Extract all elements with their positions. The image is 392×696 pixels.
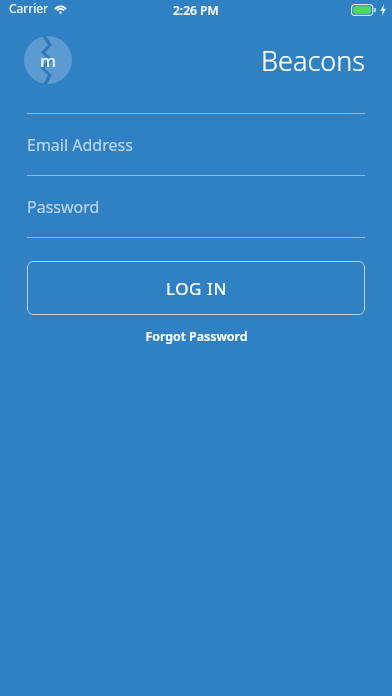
staticText: m [40,49,57,72]
staticText: LOG IN [166,277,227,300]
staticText: 2:26 PM [173,2,219,18]
staticText: Password [27,196,100,218]
staticText: Email Address [27,134,133,156]
staticText: Forgot Password [145,328,248,345]
button[interactable]: Forgot Password [27,324,365,348]
staticText: Beacons [261,42,365,79]
button[interactable]: Password input [27,176,365,237]
button[interactable]: LOG IN [27,261,365,315]
button[interactable]: Email Address input [27,114,365,175]
staticText: Carrier [9,0,49,16]
